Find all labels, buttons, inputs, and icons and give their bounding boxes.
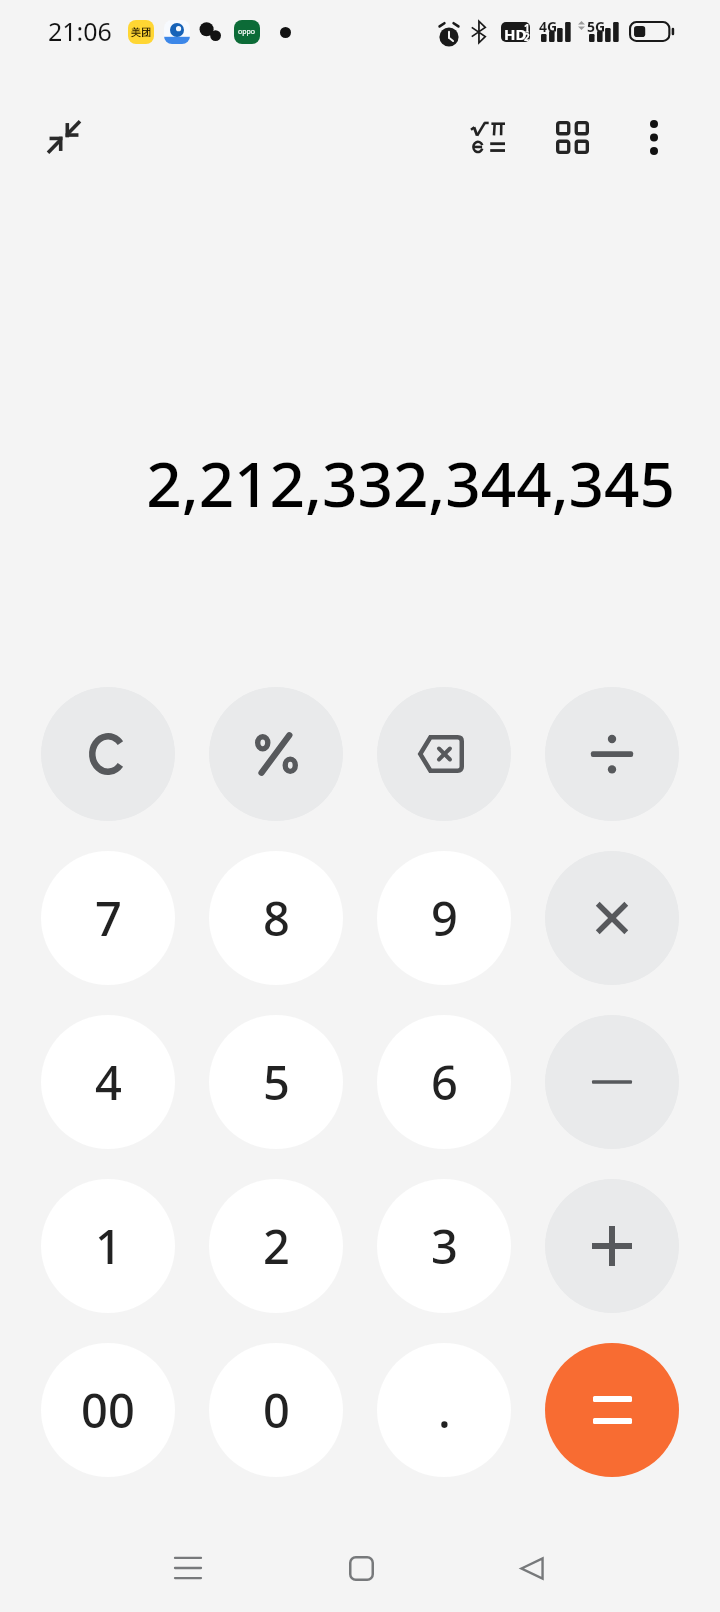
button[interactable]: 00 — [41, 1343, 175, 1477]
staticText: 21:06 — [48, 14, 112, 48]
staticText: . — [438, 1378, 451, 1442]
button[interactable]: Percent — [209, 687, 343, 821]
button[interactable]: Scientific mode — [458, 107, 518, 167]
staticText: 8 — [263, 886, 290, 950]
button[interactable]: 9 — [377, 851, 511, 985]
button[interactable]: 4 — [41, 1015, 175, 1149]
staticText: 美团 — [131, 26, 151, 39]
button[interactable]: Minus — [545, 1015, 679, 1149]
staticText: HD — [504, 24, 527, 42]
button[interactable]: Collapse — [34, 107, 94, 167]
staticText: 2 — [524, 30, 530, 42]
button[interactable]: Recents — [158, 1538, 218, 1598]
button[interactable]: 6 — [377, 1015, 511, 1149]
button[interactable]: 2 — [209, 1179, 343, 1313]
button[interactable]: 5 — [209, 1015, 343, 1149]
staticText: 0 — [263, 1378, 290, 1442]
staticText: oppo — [238, 27, 256, 37]
button[interactable]: Plus — [545, 1179, 679, 1313]
button[interactable]: Home — [331, 1538, 391, 1598]
button[interactable]: 7 — [41, 851, 175, 985]
button[interactable]: History — [542, 107, 602, 167]
staticText: 3 — [431, 1214, 458, 1278]
button[interactable]: More options — [624, 107, 684, 167]
button[interactable]: 3 — [377, 1179, 511, 1313]
staticText: 4G — [539, 17, 558, 36]
button[interactable]: Clear — [41, 687, 175, 821]
staticText: 9 — [431, 886, 458, 950]
staticText: 1 — [95, 1214, 122, 1278]
staticText: 2 — [263, 1214, 290, 1278]
staticText: 6 — [431, 1050, 458, 1114]
staticText: 4 — [95, 1050, 122, 1114]
staticText: 5 — [263, 1050, 290, 1114]
button[interactable]: Divide — [545, 687, 679, 821]
button[interactable]: Back — [502, 1538, 562, 1598]
staticText: 7 — [95, 886, 122, 950]
button[interactable]: 0 — [209, 1343, 343, 1477]
button[interactable]: 1 — [41, 1179, 175, 1313]
staticText: 00 — [81, 1378, 135, 1442]
button[interactable]: 8 — [209, 851, 343, 985]
staticText: 5G — [587, 17, 606, 36]
staticText: 2,212,332,344,345 — [146, 441, 675, 525]
button[interactable]: Backspace — [377, 687, 511, 821]
button[interactable]: Equals — [545, 1343, 679, 1477]
staticText: 1 — [524, 22, 530, 35]
button[interactable]: . — [377, 1343, 511, 1477]
button[interactable]: Multiply — [545, 851, 679, 985]
